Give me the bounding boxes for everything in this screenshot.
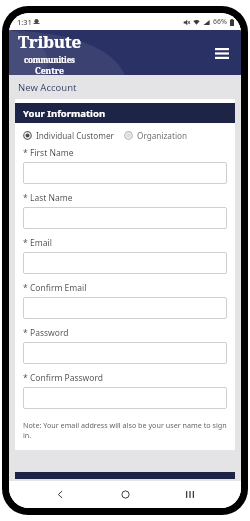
staticText: Email [30,237,52,249]
staticText: 1:31 [17,17,32,27]
staticText: * [23,327,30,339]
button[interactable]: Home [111,481,139,508]
staticText: New Account [18,81,77,94]
staticText: Password [30,327,69,339]
staticText: 66% [213,17,227,27]
button[interactable] [23,252,227,274]
staticText: communities [24,54,75,65]
button[interactable]: Tribute [18,30,81,75]
staticText: Your Information [23,107,106,120]
staticText: * [23,372,30,384]
staticText: Confirm Email [30,282,87,294]
staticText: Note: Your email address will also be yo… [23,420,227,440]
staticText: * [23,192,30,204]
button[interactable]: Menu [211,42,233,64]
staticText: * [23,237,30,249]
button[interactable] [23,342,227,364]
staticText: Confirm Password [30,372,103,384]
button[interactable] [23,387,227,409]
staticText: Centre [35,65,64,75]
staticText: * [23,147,30,159]
staticText: Individual Customer [36,130,114,141]
button[interactable] [23,207,227,229]
button[interactable] [23,297,227,319]
button[interactable]: Organization [124,130,188,141]
button[interactable]: Back [46,481,74,508]
button[interactable]: Recent apps [176,481,204,508]
button[interactable]: New Account [9,75,241,99]
staticText: Tribute [18,30,81,53]
button[interactable] [23,162,227,184]
staticText: Organization [137,130,188,141]
button[interactable]: Individual Customer [23,130,114,141]
staticText: Last Name [30,192,73,204]
staticText: First Name [30,147,74,159]
staticText: * [23,282,30,294]
